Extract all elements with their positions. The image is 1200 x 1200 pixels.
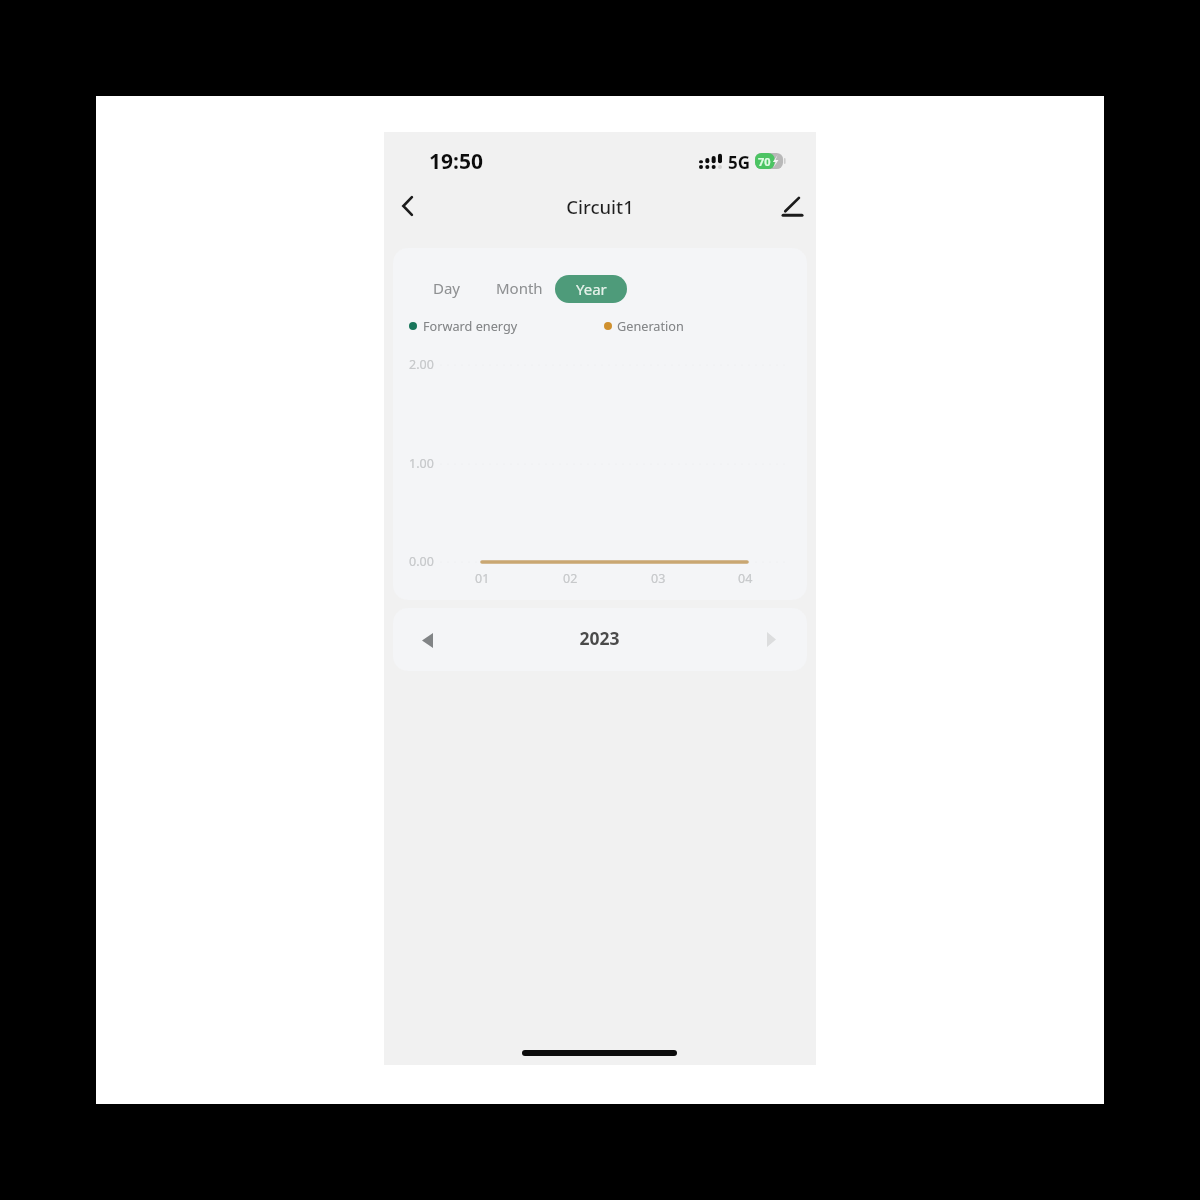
staticText: Circuit1 bbox=[384, 194, 816, 219]
staticText: 03 bbox=[651, 570, 666, 587]
staticText: Year bbox=[576, 279, 607, 299]
staticText: 5G bbox=[728, 151, 751, 174]
button[interactable]: Previous year bbox=[407, 619, 449, 661]
button[interactable]: Next year bbox=[751, 619, 793, 661]
staticText: 70 bbox=[758, 154, 771, 169]
staticText: 2023 bbox=[393, 626, 806, 650]
button[interactable]: Year bbox=[555, 275, 627, 303]
staticText: Generation bbox=[617, 317, 684, 334]
button[interactable]: Month bbox=[479, 274, 560, 302]
staticText: 0.00 bbox=[409, 553, 434, 570]
button[interactable]: Edit bbox=[769, 184, 813, 228]
staticText: Forward energy bbox=[423, 317, 518, 334]
button[interactable]: Back bbox=[385, 184, 429, 228]
staticText: Month bbox=[496, 278, 543, 298]
staticText: 19:50 bbox=[429, 147, 483, 176]
staticText: 02 bbox=[563, 570, 578, 587]
staticText: 04 bbox=[738, 570, 753, 587]
button[interactable]: Day bbox=[416, 274, 478, 302]
staticText: Day bbox=[433, 278, 461, 298]
staticText: 2.00 bbox=[409, 356, 434, 373]
staticText: 01 bbox=[475, 570, 490, 587]
staticText: 1.00 bbox=[409, 455, 434, 472]
